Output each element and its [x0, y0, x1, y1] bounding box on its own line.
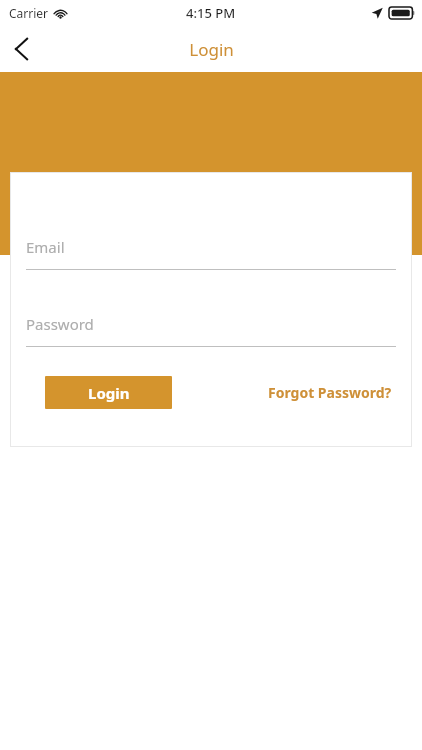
button[interactable]: Forgot Password? — [264, 377, 396, 408]
staticText: 4:15 PM — [186, 4, 236, 22]
staticText: Login — [189, 38, 234, 61]
staticText: Email — [26, 237, 65, 257]
button[interactable]: Password — [10, 311, 412, 347]
button[interactable]: Login — [45, 376, 172, 409]
staticText: Forgot Password? — [268, 383, 392, 402]
button[interactable]: Email — [10, 234, 412, 270]
staticText: Password — [26, 314, 94, 334]
staticText: Login — [88, 383, 130, 403]
staticText: Carrier — [9, 5, 49, 21]
button[interactable]: Back — [0, 27, 44, 71]
